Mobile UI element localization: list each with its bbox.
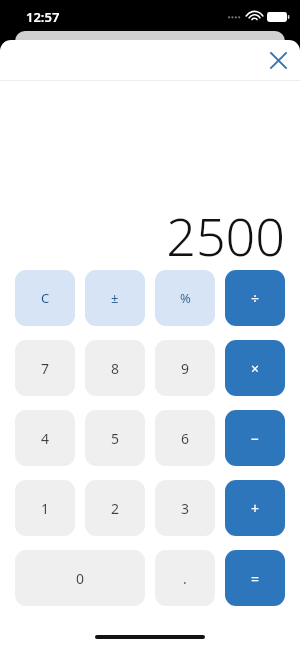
staticText: ± [111, 289, 119, 307]
button[interactable]: 5 [85, 410, 145, 466]
staticText: + [251, 499, 260, 518]
button[interactable]: 8 [85, 340, 145, 396]
staticText: 7 [41, 359, 50, 378]
staticText: 2500 [0, 200, 285, 271]
staticText: × [251, 359, 260, 378]
button[interactable]: 2 [85, 480, 145, 536]
button[interactable]: 9 [155, 340, 215, 396]
staticText: 3 [181, 499, 190, 518]
button[interactable]: − [225, 410, 285, 466]
button[interactable]: 0 [15, 550, 145, 606]
button[interactable]: ± [85, 270, 145, 326]
button[interactable]: C [15, 270, 75, 326]
button[interactable]: 3 [155, 480, 215, 536]
button[interactable]: 7 [15, 340, 75, 396]
staticText: C [41, 289, 50, 307]
button[interactable]: Close [260, 42, 296, 78]
staticText: . [183, 569, 187, 588]
staticText: 4 [41, 429, 50, 448]
button[interactable]: 6 [155, 410, 215, 466]
staticText: − [251, 429, 260, 448]
staticText: 8 [111, 359, 120, 378]
staticText: 5 [111, 429, 120, 448]
button[interactable]: 4 [15, 410, 75, 466]
staticText: ÷ [251, 289, 260, 308]
button[interactable]: × [225, 340, 285, 396]
button[interactable]: . [155, 550, 215, 606]
button[interactable]: 1 [15, 480, 75, 536]
button[interactable]: + [225, 480, 285, 536]
staticText: 12:57 [26, 8, 60, 26]
staticText: = [251, 569, 260, 588]
button[interactable]: = [225, 550, 285, 606]
staticText: % [180, 289, 191, 307]
staticText: 9 [181, 359, 190, 378]
button[interactable]: % [155, 270, 215, 326]
staticText: 1 [41, 499, 50, 518]
staticText: 2 [111, 499, 120, 518]
button[interactable]: ÷ [225, 270, 285, 326]
staticText: 6 [181, 429, 190, 448]
staticText: 0 [76, 569, 85, 588]
